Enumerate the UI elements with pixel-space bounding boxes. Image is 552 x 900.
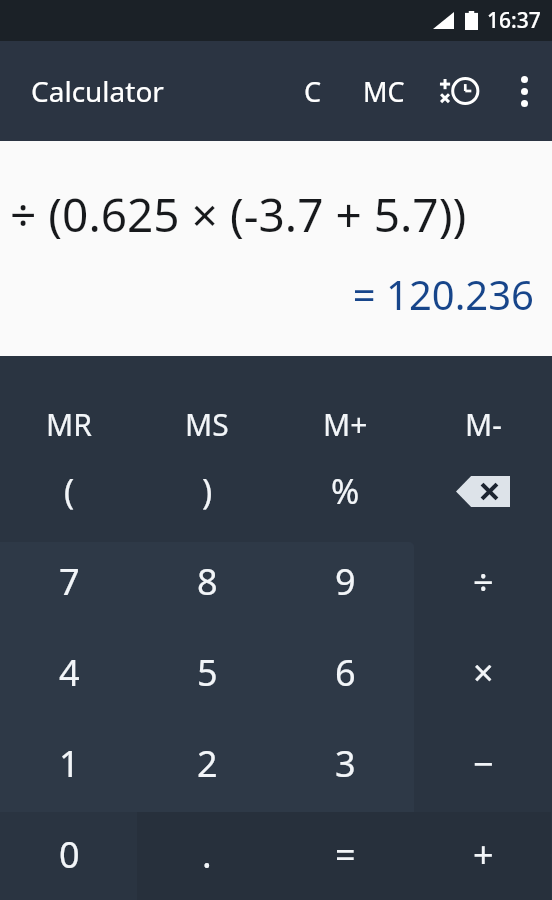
button[interactable]: ) bbox=[138, 446, 276, 536]
staticText: 3 bbox=[335, 739, 356, 788]
button[interactable]: ÷ bbox=[414, 536, 552, 627]
staticText: = bbox=[335, 830, 356, 879]
button[interactable]: M- bbox=[414, 356, 552, 446]
button[interactable]: = bbox=[276, 809, 414, 900]
staticText: C bbox=[304, 73, 322, 110]
staticText: % bbox=[331, 468, 360, 514]
button[interactable]: + bbox=[414, 809, 552, 900]
staticText: Calculator bbox=[31, 72, 164, 110]
staticText: MC bbox=[363, 73, 405, 110]
staticText: − bbox=[473, 739, 494, 788]
button[interactable]: 4 bbox=[0, 627, 138, 718]
button[interactable]: 6 bbox=[276, 627, 414, 718]
button[interactable]: 8 bbox=[138, 536, 276, 627]
button[interactable]: 0 bbox=[0, 809, 138, 900]
button[interactable]: 5 bbox=[138, 627, 276, 718]
staticText: 0 bbox=[59, 830, 80, 879]
button[interactable]: 3 bbox=[276, 718, 414, 809]
staticText: . bbox=[202, 830, 212, 879]
staticText: 2 bbox=[197, 739, 218, 788]
button[interactable]: MS bbox=[138, 356, 276, 446]
button[interactable]: ( bbox=[0, 446, 138, 536]
staticText: ) bbox=[202, 468, 213, 514]
staticText: MR bbox=[46, 404, 92, 445]
button[interactable]: 1 bbox=[0, 718, 138, 809]
staticText: 8 bbox=[197, 557, 218, 606]
staticText: 16:37 bbox=[487, 6, 541, 35]
staticText: 5 bbox=[197, 648, 218, 697]
staticText: MS bbox=[185, 404, 229, 445]
button[interactable]: 9 bbox=[276, 536, 414, 627]
button[interactable]: 2 bbox=[138, 718, 276, 809]
button[interactable]: MC bbox=[344, 41, 424, 141]
button[interactable]: Backspace bbox=[414, 446, 552, 536]
button[interactable]: History bbox=[424, 41, 496, 141]
staticText: ( bbox=[64, 468, 75, 514]
staticText: M- bbox=[465, 404, 502, 445]
button[interactable]: 7 bbox=[0, 536, 138, 627]
staticText: M+ bbox=[323, 404, 368, 445]
button[interactable]: M+ bbox=[276, 356, 414, 446]
staticText: ÷ bbox=[473, 557, 494, 606]
staticText: ÷ (0.625 × (-3.7 + 5.7)) bbox=[10, 183, 467, 246]
button[interactable]: − bbox=[414, 718, 552, 809]
staticText: 9 bbox=[335, 557, 356, 606]
staticText: = 120.236 bbox=[352, 267, 534, 321]
button[interactable]: MR bbox=[0, 356, 138, 446]
staticText: 6 bbox=[335, 648, 356, 697]
button[interactable]: C bbox=[282, 41, 344, 141]
button[interactable]: More options bbox=[496, 41, 552, 141]
staticText: + bbox=[473, 830, 494, 879]
staticText: 7 bbox=[59, 557, 80, 606]
staticText: × bbox=[473, 648, 494, 697]
button[interactable]: % bbox=[276, 446, 414, 536]
staticText: 1 bbox=[59, 739, 80, 788]
button[interactable]: . bbox=[138, 809, 276, 900]
staticText: 4 bbox=[59, 648, 80, 697]
button[interactable]: × bbox=[414, 627, 552, 718]
